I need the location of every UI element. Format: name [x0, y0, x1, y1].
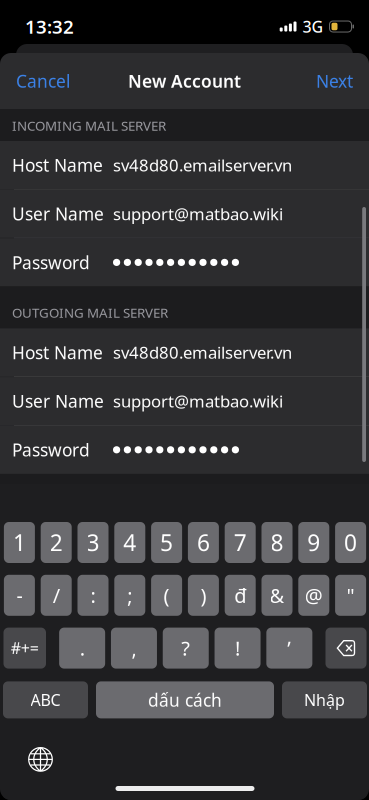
- staticText: ABC: [30, 689, 60, 710]
- button[interactable]: 8: [261, 522, 292, 563]
- staticText: ?: [181, 635, 190, 661]
- button[interactable]: ’: [266, 628, 312, 669]
- staticText: ): [200, 582, 206, 609]
- button[interactable]: Host Name: [0, 328, 369, 376]
- staticText: 2: [50, 527, 63, 557]
- button[interactable]: 6: [188, 522, 219, 563]
- button[interactable]: 9: [298, 522, 329, 563]
- button[interactable]: /: [41, 575, 72, 616]
- staticText: 4: [123, 527, 136, 557]
- staticText: Host Name: [12, 153, 103, 176]
- staticText: -: [16, 582, 22, 609]
- button[interactable]: 7: [225, 522, 256, 563]
- staticText: Next: [316, 69, 353, 92]
- button[interactable]: .: [59, 628, 105, 669]
- button[interactable]: Password: [0, 426, 369, 474]
- button[interactable]: Switch keyboard: [18, 737, 62, 781]
- button[interactable]: ?: [163, 628, 209, 669]
- staticText: Password: [12, 438, 90, 461]
- button[interactable]: ;: [114, 575, 145, 616]
- staticText: dấu cách: [148, 688, 222, 711]
- button[interactable]: ABC: [3, 681, 88, 718]
- button[interactable]: 2: [41, 522, 72, 563]
- staticText: ,: [131, 635, 136, 661]
- staticText: 8: [270, 527, 283, 557]
- button[interactable]: User Name: [0, 377, 369, 425]
- staticText: INCOMING MAIL SERVER: [12, 117, 166, 134]
- staticText: 0: [344, 527, 357, 557]
- staticText: ’: [287, 635, 291, 661]
- staticText: ;: [127, 582, 132, 609]
- staticText: support@matbao.wiki: [113, 202, 283, 225]
- button[interactable]: 1: [4, 522, 35, 563]
- staticText: 3: [86, 527, 99, 557]
- button[interactable]: ,: [111, 628, 157, 669]
- staticText: @: [305, 582, 323, 609]
- staticText: New Account: [128, 69, 241, 92]
- button[interactable]: -: [4, 575, 35, 616]
- staticText: User Name: [12, 202, 104, 225]
- staticText: Nhập: [304, 689, 345, 710]
- staticText: User Name: [12, 390, 104, 413]
- staticText: sv48d80.emailserver.vn: [113, 341, 292, 364]
- button[interactable]: User Name: [0, 190, 369, 238]
- staticText: 5: [160, 527, 173, 557]
- staticText: support@matbao.wiki: [113, 390, 283, 412]
- staticText: 13:32: [25, 14, 74, 39]
- button[interactable]: ": [335, 575, 366, 616]
- button[interactable]: Host Name: [0, 141, 369, 189]
- button[interactable]: Nhập: [282, 681, 367, 718]
- button[interactable]: dấu cách: [96, 681, 274, 718]
- button[interactable]: 4: [114, 522, 145, 563]
- staticText: OUTGOING MAIL SERVER: [12, 304, 168, 321]
- button[interactable]: @: [298, 575, 329, 616]
- staticText: sv48d80.emailserver.vn: [113, 154, 292, 176]
- staticText: !: [235, 635, 240, 661]
- button[interactable]: đ: [225, 575, 256, 616]
- staticText: (: [164, 582, 170, 609]
- button[interactable]: Next: [300, 53, 369, 109]
- staticText: 1: [13, 527, 26, 557]
- staticText: .: [80, 635, 85, 661]
- button[interactable]: 0: [335, 522, 366, 563]
- staticText: 6: [197, 527, 210, 557]
- button[interactable]: !: [214, 628, 260, 669]
- button[interactable]: Cancel: [0, 53, 86, 109]
- staticText: :: [90, 582, 95, 609]
- staticText: #+=: [11, 637, 39, 659]
- button[interactable]: 5: [151, 522, 182, 563]
- staticText: /: [53, 582, 60, 609]
- staticText: đ: [234, 582, 246, 609]
- button[interactable]: Delete: [325, 628, 366, 669]
- button[interactable]: &: [261, 575, 292, 616]
- staticText: Host Name: [12, 341, 103, 364]
- staticText: Cancel: [16, 69, 70, 92]
- staticText: 7: [234, 527, 247, 557]
- staticText: Password: [12, 251, 90, 274]
- staticText: 3G: [302, 16, 323, 37]
- button[interactable]: 3: [77, 522, 108, 563]
- button[interactable]: (: [151, 575, 182, 616]
- staticText: ": [347, 582, 355, 609]
- button[interactable]: #+=: [3, 628, 46, 669]
- button[interactable]: ): [188, 575, 219, 616]
- button[interactable]: :: [77, 575, 108, 616]
- staticText: &: [269, 582, 284, 609]
- button[interactable]: Password: [0, 238, 369, 286]
- staticText: 9: [307, 527, 320, 557]
